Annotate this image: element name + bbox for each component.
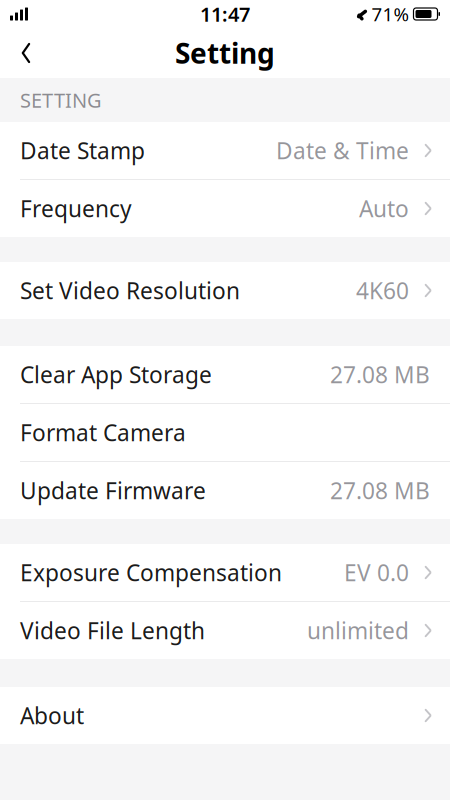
button[interactable]: Frequency [0, 180, 450, 237]
button[interactable]: Clear App Storage [0, 346, 450, 403]
staticText: Frequency [20, 193, 132, 223]
button[interactable]: Date Stamp [0, 122, 450, 179]
staticText: 27.08 MB [330, 359, 430, 389]
staticText: Clear App Storage [20, 359, 212, 389]
staticText: unlimited [307, 615, 409, 645]
staticText: SETTING [20, 87, 102, 113]
button[interactable]: Update Firmware [0, 462, 450, 519]
staticText: 4K60 [356, 275, 409, 305]
staticText: Set Video Resolution [20, 275, 240, 305]
staticText: 11:47 [200, 1, 250, 27]
staticText: Setting [175, 34, 275, 72]
staticText: 71% [371, 2, 409, 26]
button[interactable]: Back [4, 28, 48, 78]
staticText: Date & Time [276, 135, 409, 165]
button[interactable]: Format Camera [0, 404, 450, 461]
staticText: Video File Length [20, 615, 205, 645]
button[interactable]: Set Video Resolution [0, 262, 450, 319]
staticText: About [20, 700, 84, 730]
button[interactable]: About [0, 687, 450, 744]
staticText: Date Stamp [20, 135, 145, 165]
staticText: Exposure Compensation [20, 557, 282, 587]
staticText: 27.08 MB [330, 475, 430, 505]
button[interactable]: Video File Length [0, 602, 450, 659]
staticText: Update Firmware [20, 475, 206, 505]
button[interactable]: Exposure Compensation [0, 544, 450, 601]
staticText: Auto [359, 193, 409, 223]
staticText: Format Camera [20, 417, 186, 447]
staticText: EV 0.0 [344, 557, 409, 587]
